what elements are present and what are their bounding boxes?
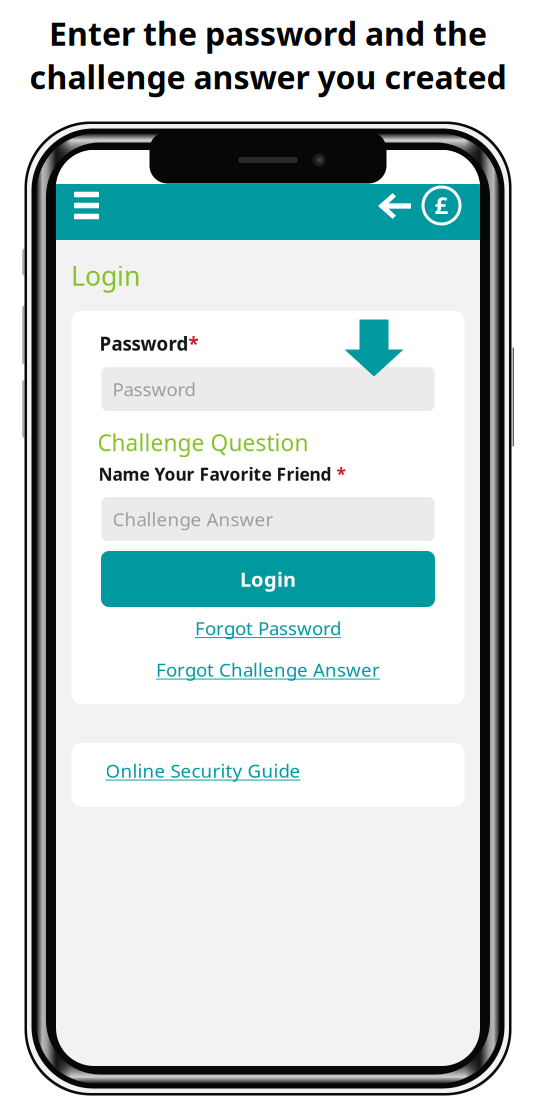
button[interactable]: Menu (56, 184, 117, 240)
staticText: Forgot Password (195, 616, 341, 640)
staticText: challenge answer you created (29, 55, 506, 98)
button[interactable]: Accounts (422, 184, 480, 240)
staticText: * (188, 331, 198, 356)
staticText: Forgot Challenge Answer (156, 657, 380, 682)
button[interactable]: Online Security Guide (71, 743, 464, 807)
staticText: Challenge Question (97, 427, 308, 457)
staticText: Login (71, 258, 140, 293)
button[interactable]: Forgot Password (71, 607, 464, 649)
staticText: Login (240, 566, 296, 592)
staticText: Challenge Answer (112, 507, 273, 531)
button[interactable]: Forgot Challenge Answer (71, 649, 464, 690)
staticText: Enter the password and the (49, 12, 487, 54)
button[interactable]: Back (362, 184, 422, 240)
staticText: * (336, 462, 345, 485)
staticText: Password (99, 331, 188, 356)
staticText: Password (112, 377, 195, 401)
staticText: Name Your Favorite Friend (98, 462, 336, 485)
staticText: £ (434, 189, 448, 221)
button[interactable]: Login (101, 551, 435, 607)
staticText: Online Security Guide (105, 758, 300, 783)
